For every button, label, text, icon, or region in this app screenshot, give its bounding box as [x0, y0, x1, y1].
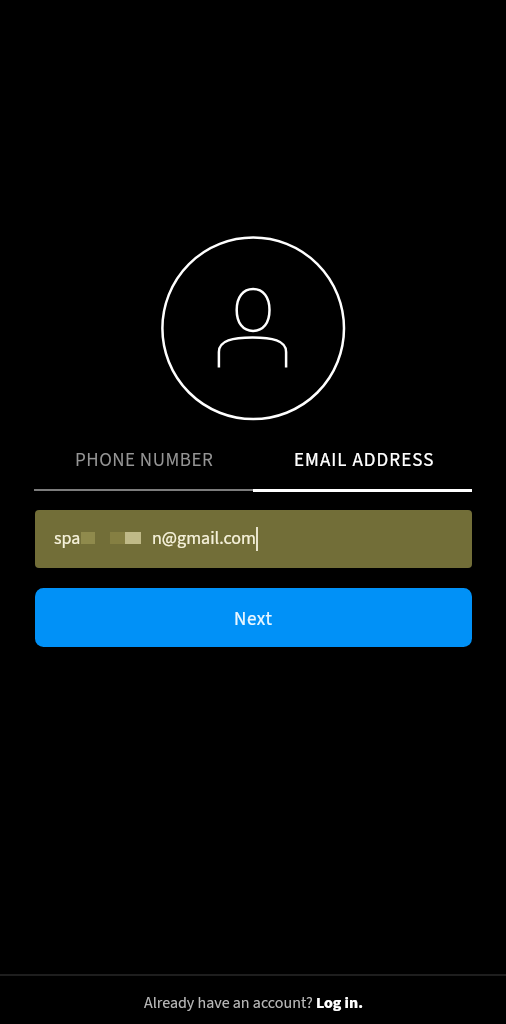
other: Add profile photo — [160, 235, 346, 421]
staticText: Already have an account? Log in. — [144, 992, 363, 1015]
staticText: EMAIL ADDRESS — [294, 447, 435, 474]
button[interactable]: Next — [35, 588, 472, 647]
button[interactable]: PHONE NUMBER — [34, 433, 253, 488]
button[interactable]: EMAIL ADDRESS — [253, 433, 472, 488]
staticText: n@gmail.com — [152, 526, 256, 552]
staticText: Next — [234, 606, 273, 633]
staticText: spa — [54, 526, 81, 552]
button[interactable]: spa — [35, 510, 472, 568]
button[interactable]: Already have an account? Log in. — [0, 976, 506, 1024]
staticText: PHONE NUMBER — [75, 447, 214, 474]
